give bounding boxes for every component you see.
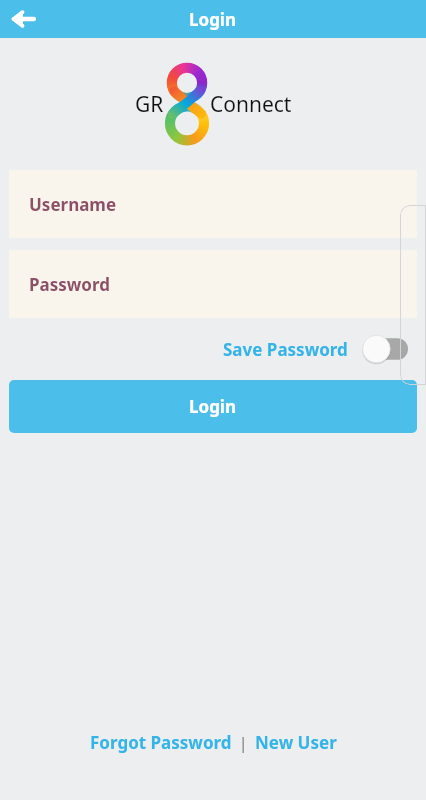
button[interactable]: New User: [253, 727, 339, 758]
staticText: Username: [29, 193, 117, 216]
staticText: |: [234, 731, 253, 754]
staticText: Login: [189, 8, 237, 31]
staticText: Forgot Password: [90, 731, 232, 754]
button[interactable]: Forgot Password: [88, 727, 234, 758]
button[interactable]: Password: [9, 250, 417, 318]
staticText: Save Password: [223, 338, 348, 361]
button[interactable]: Save Password: [219, 330, 412, 368]
button[interactable]: Back: [4, 0, 44, 38]
button[interactable]: Username: [9, 170, 417, 238]
staticText: Password: [29, 273, 110, 296]
staticText: New User: [255, 731, 337, 754]
button[interactable]: Login: [9, 380, 417, 433]
staticText: Login: [189, 395, 237, 418]
staticText: Connect: [210, 90, 292, 119]
staticText: GR: [135, 90, 164, 119]
